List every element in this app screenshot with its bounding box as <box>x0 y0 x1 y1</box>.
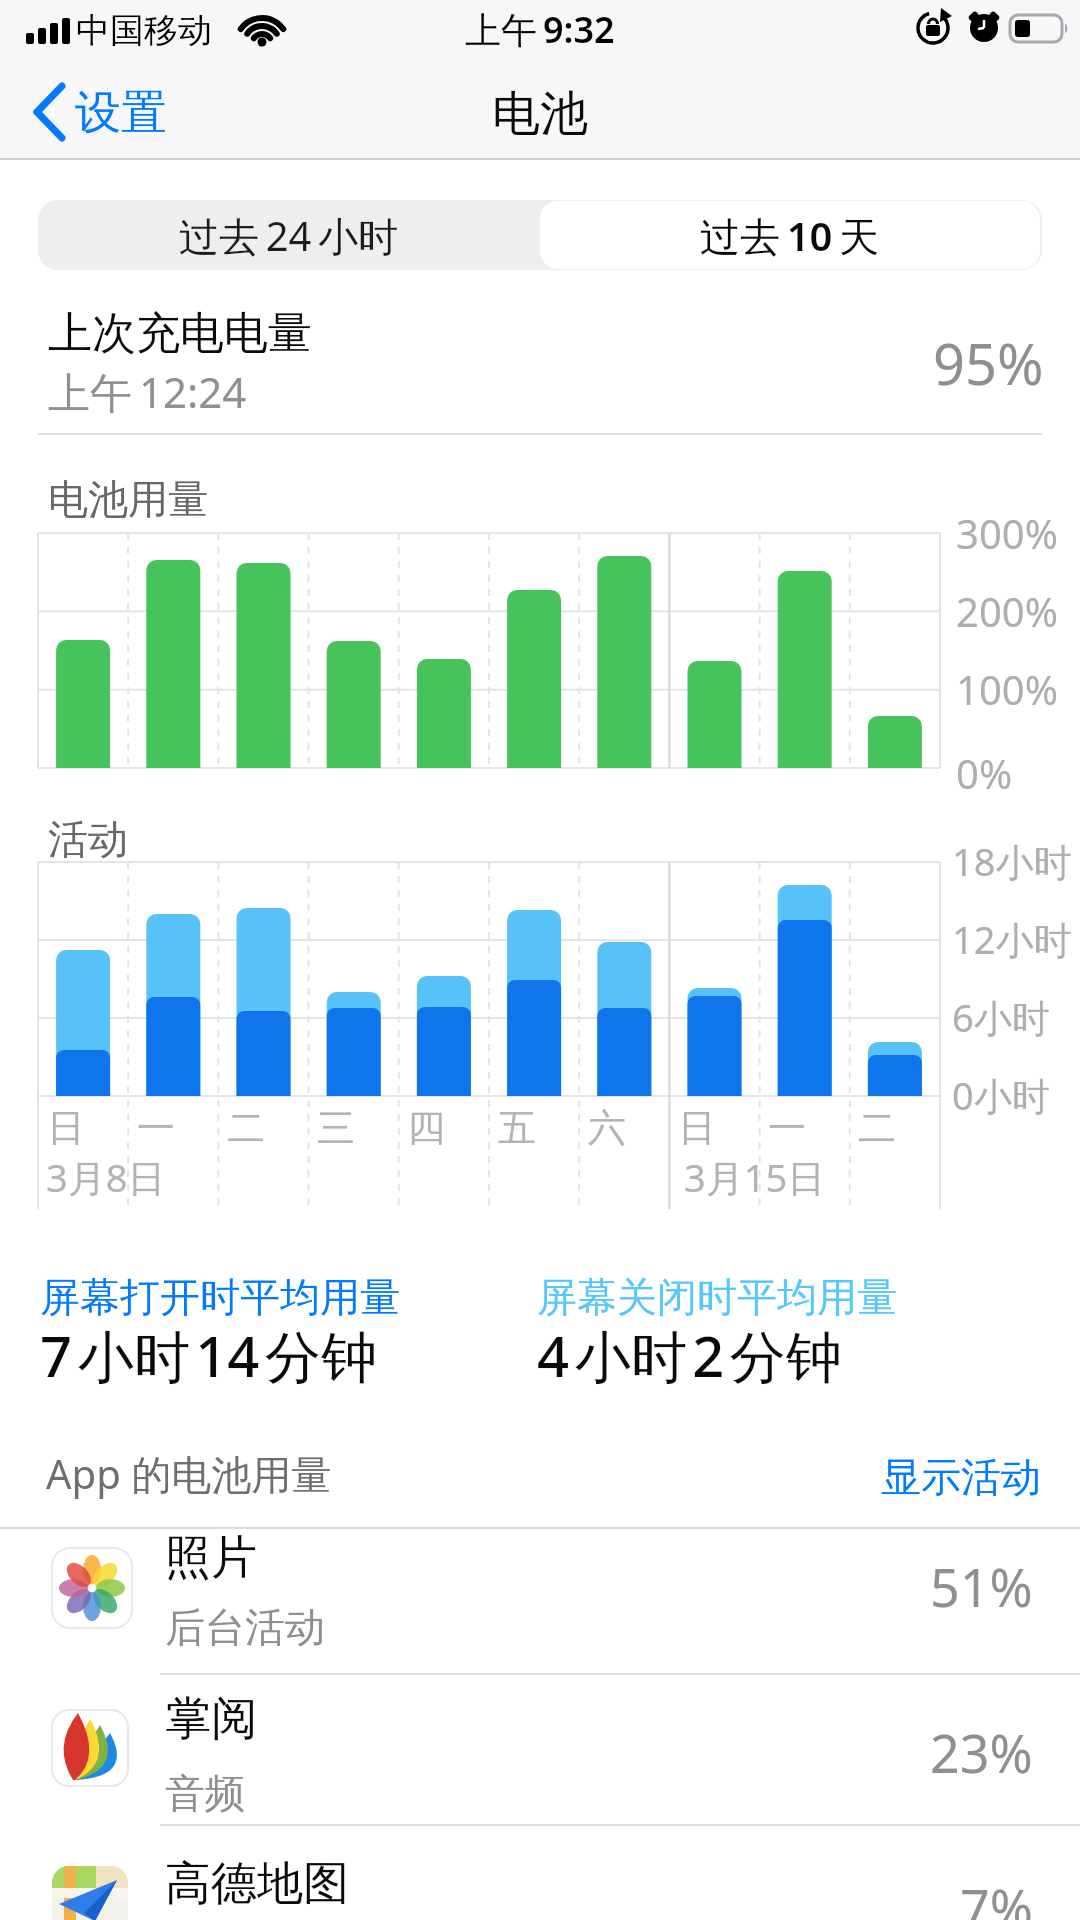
staticText: 7% <box>960 1872 1033 1920</box>
staticText: 照片 <box>165 1529 257 1587</box>
staticText: 51% <box>930 1551 1033 1622</box>
staticText: 日 <box>678 1104 716 1152</box>
staticText: 电池 <box>492 84 588 144</box>
staticText: 掌阅 <box>165 1690 257 1748</box>
staticText: 中国移动 <box>76 9 212 52</box>
staticText: 3月8日 <box>46 1151 166 1203</box>
staticText: 23% <box>930 1717 1033 1788</box>
staticText: 音频 <box>165 1768 245 1818</box>
staticText: 显示活动 <box>881 1452 1041 1502</box>
staticText: 上午 12:24 <box>48 363 247 420</box>
staticText: 95% <box>933 325 1044 401</box>
staticText: 18小时 <box>952 835 1072 887</box>
staticText: 过去 10 天 <box>700 208 880 263</box>
staticText: 上午 9:32 <box>465 5 615 54</box>
staticText: 二 <box>227 1104 265 1152</box>
staticText: 五 <box>498 1104 536 1152</box>
button[interactable] <box>0 1528 1080 1674</box>
button[interactable]: 设置 <box>30 75 180 150</box>
staticText: 300% <box>956 506 1058 560</box>
staticText: 0小时 <box>952 1069 1050 1121</box>
staticText: 过去 24 小时 <box>179 208 399 263</box>
button[interactable] <box>0 1825 1080 1920</box>
staticText: 4 小时 2 分钟 <box>537 1317 842 1393</box>
staticText: 电池用量 <box>48 474 208 524</box>
staticText: 设置 <box>75 84 167 142</box>
staticText: 二 <box>858 1104 896 1152</box>
staticText: 日 <box>47 1104 85 1152</box>
staticText: 高德地图 <box>165 1855 349 1913</box>
staticText: App 的电池用量 <box>46 1446 332 1501</box>
button[interactable]: 过去 24 小时 <box>38 200 540 270</box>
button[interactable]: 过去 10 天 <box>540 201 1040 269</box>
staticText: 7 小时 14 分钟 <box>40 1317 377 1393</box>
staticText: 六 <box>588 1104 626 1152</box>
staticText: 三 <box>317 1104 355 1152</box>
staticText: 12小时 <box>952 913 1072 965</box>
staticText: 屏幕打开时平均用量 <box>40 1272 400 1322</box>
staticText: 0% <box>956 746 1013 800</box>
staticText: 100% <box>956 662 1058 716</box>
staticText: 6小时 <box>952 991 1050 1043</box>
staticText: 3月15日 <box>684 1151 826 1203</box>
button[interactable]: 显示活动 <box>841 1436 1041 1496</box>
staticText: 活动 <box>48 814 128 864</box>
button[interactable] <box>0 1674 1080 1825</box>
staticText: 四 <box>407 1104 445 1152</box>
staticText: 200% <box>956 584 1058 638</box>
staticText: 后台活动 <box>165 1602 325 1652</box>
staticText: 一 <box>768 1104 806 1152</box>
staticText: 屏幕关闭时平均用量 <box>537 1272 897 1322</box>
staticText: 上次充电电量 <box>48 306 312 361</box>
staticText: 一 <box>137 1104 175 1152</box>
